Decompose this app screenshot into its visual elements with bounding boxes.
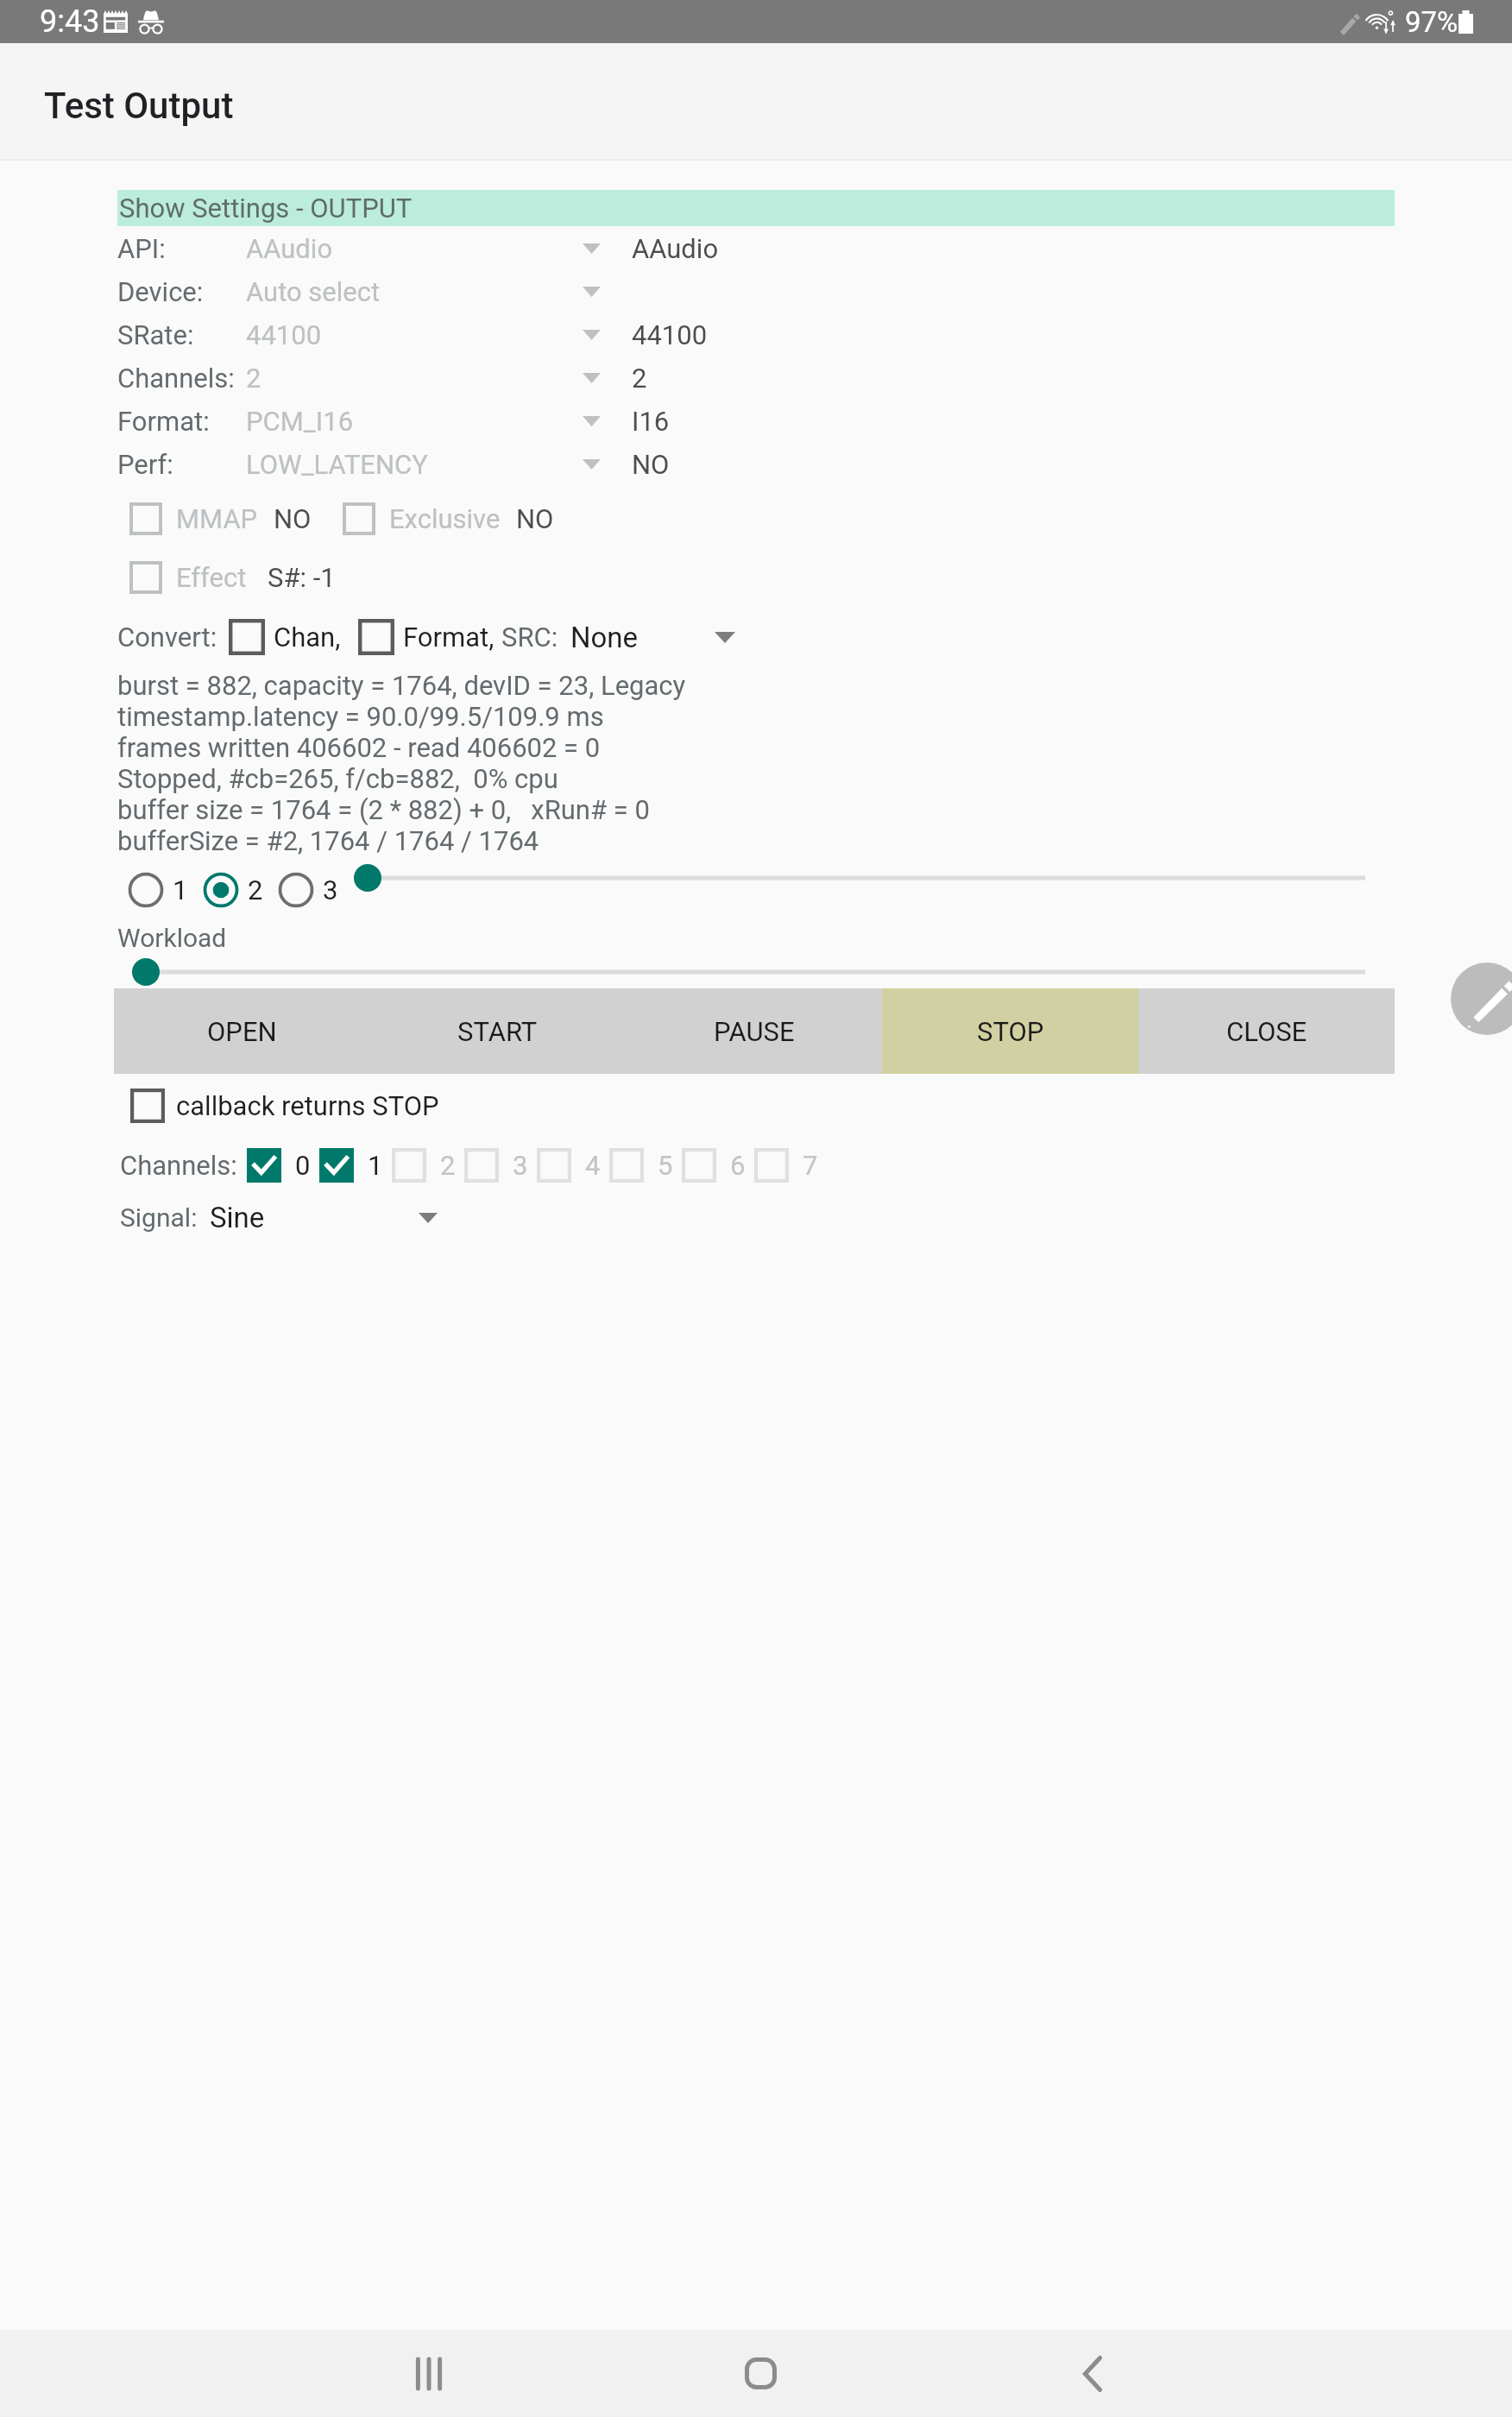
button[interactable]	[129, 561, 162, 594]
button[interactable]: 3	[464, 1148, 527, 1183]
button[interactable]: Choose Perf:	[574, 443, 608, 486]
button[interactable]: Home	[717, 2330, 803, 2417]
button[interactable]: Edit	[1451, 962, 1512, 1035]
staticText: Exclusive	[389, 503, 501, 534]
staticText: 2	[248, 874, 263, 906]
button[interactable]	[609, 1148, 644, 1183]
staticText: MMAP	[176, 503, 258, 534]
button[interactable]: callback returns STOP	[130, 1083, 439, 1128]
button[interactable]: OPEN	[114, 988, 369, 1074]
button[interactable]: START	[369, 988, 626, 1074]
staticText: Stopped, #cb=265, f/cb=882, 0% cpu	[117, 763, 558, 794]
staticText: 6	[730, 1150, 745, 1181]
staticText: Test Output	[44, 85, 234, 127]
staticText: CLOSE	[1226, 1016, 1307, 1047]
button[interactable]	[319, 1148, 354, 1183]
button[interactable]: Slider	[127, 953, 1384, 991]
button[interactable]: 7	[754, 1148, 817, 1183]
button[interactable]: Recent apps	[386, 2330, 472, 2417]
staticText: S#: -1	[268, 562, 336, 593]
button[interactable]: 0	[247, 1148, 310, 1183]
staticText: 1	[368, 1150, 382, 1181]
staticText: 1	[173, 874, 188, 906]
staticText: 97%	[1405, 5, 1458, 39]
button[interactable]: 4	[537, 1148, 600, 1183]
staticText: Channels:	[120, 1150, 237, 1181]
staticText: 44100	[632, 319, 708, 350]
button[interactable]: Sine	[210, 1201, 438, 1234]
button[interactable]: 6	[682, 1148, 745, 1183]
button[interactable]	[343, 502, 375, 535]
button[interactable]: Choose Device:	[574, 270, 608, 313]
staticText: START	[457, 1016, 538, 1047]
staticText: PCM_I16	[246, 406, 354, 437]
button[interactable]: 2	[200, 869, 263, 911]
button[interactable]: 1	[319, 1148, 382, 1183]
staticText: bufferSize = #2, 1764 / 1764 / 1764	[117, 825, 539, 856]
button[interactable]: None	[570, 621, 735, 654]
staticText: 2	[440, 1150, 455, 1181]
staticText: NO	[632, 449, 670, 480]
button[interactable]	[682, 1148, 716, 1183]
staticText: Format,	[403, 622, 495, 653]
button[interactable]	[125, 869, 167, 911]
staticText: buffer size = 1764 = (2 * 882) + 0, xRun…	[117, 794, 650, 825]
staticText: PAUSE	[714, 1016, 795, 1047]
button[interactable]: Choose API:	[574, 227, 608, 270]
button[interactable]	[229, 619, 265, 655]
button[interactable]: Slider	[349, 859, 1384, 897]
button[interactable]: Back	[1049, 2330, 1136, 2417]
button[interactable]: 3	[275, 869, 338, 911]
button[interactable]: PAUSE	[626, 988, 882, 1074]
staticText: None	[570, 621, 639, 654]
staticText: 44100	[246, 319, 322, 350]
staticText: Sine	[210, 1201, 265, 1234]
staticText: AAudio	[632, 233, 719, 264]
staticText: frames written 406602 - read 406602 = 0	[117, 732, 601, 763]
button[interactable]: CLOSE	[1138, 988, 1395, 1074]
staticText: AAudio	[246, 233, 333, 264]
button[interactable]: 5	[609, 1148, 672, 1183]
staticText: Effect	[176, 562, 247, 593]
button[interactable]: 2	[392, 1148, 455, 1183]
staticText: API:	[117, 233, 166, 264]
staticText: 2	[246, 363, 261, 394]
button[interactable]	[130, 1089, 165, 1123]
staticText: SRC:	[501, 622, 558, 653]
staticText: Device:	[117, 276, 204, 307]
staticText: Perf:	[117, 449, 173, 480]
staticText: STOP	[977, 1016, 1044, 1047]
button[interactable]: Chan,	[229, 619, 341, 655]
button[interactable]	[200, 869, 242, 911]
button[interactable]	[464, 1148, 499, 1183]
button[interactable]: Choose Channels:	[574, 357, 608, 400]
button[interactable]: Test Output	[0, 43, 1512, 161]
button[interactable]: Effect	[129, 561, 247, 594]
button[interactable]: Choose Format:	[574, 400, 608, 443]
staticText: 0	[295, 1150, 310, 1181]
button[interactable]: Choose SRate:	[574, 313, 608, 357]
button[interactable]	[392, 1148, 426, 1183]
button[interactable]: STOP	[882, 988, 1138, 1074]
button[interactable]	[537, 1148, 571, 1183]
button[interactable]: Exclusive	[343, 502, 501, 535]
button[interactable]: 1	[125, 869, 188, 911]
staticText: SRate:	[117, 319, 194, 350]
staticText: 3	[513, 1150, 527, 1181]
staticText: Convert:	[117, 622, 217, 653]
staticText: Workload	[117, 923, 227, 953]
button[interactable]	[754, 1148, 789, 1183]
button[interactable]	[358, 619, 394, 655]
staticText: Show Settings - OUTPUT	[119, 192, 413, 224]
staticText: I16	[632, 406, 670, 437]
button[interactable]	[247, 1148, 281, 1183]
button[interactable]: Show Settings - OUTPUT	[117, 190, 1395, 226]
staticText: OPEN	[207, 1016, 277, 1047]
button[interactable]	[275, 869, 317, 911]
button[interactable]	[129, 502, 162, 535]
staticText: burst = 882, capacity = 1764, devID = 23…	[117, 670, 686, 701]
button[interactable]: Format,	[358, 619, 495, 655]
button[interactable]: MMAP	[129, 502, 258, 535]
staticText: Signal:	[120, 1202, 198, 1233]
staticText: NO	[274, 503, 312, 534]
